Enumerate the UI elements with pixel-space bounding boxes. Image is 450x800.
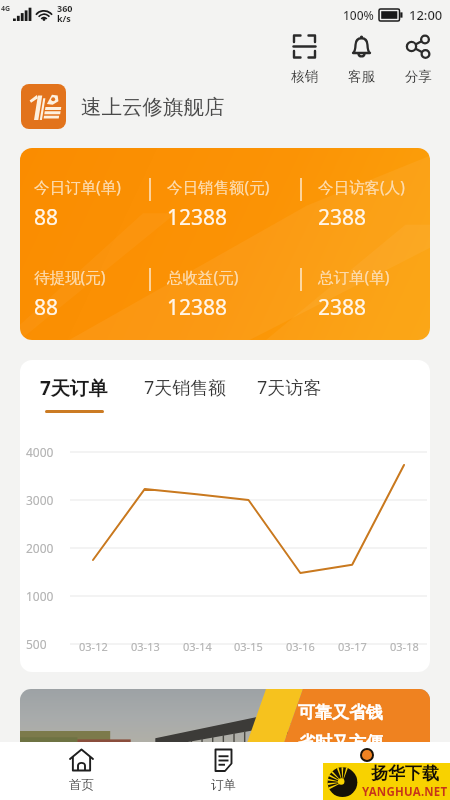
staticText: 待提现(元) (34, 266, 106, 287)
staticText: 03-16 (286, 639, 315, 654)
staticText: 客服 (348, 68, 375, 85)
staticText: 今日订单(单) (34, 176, 121, 197)
staticText: 订单 (211, 777, 236, 793)
staticText: 4G (1, 4, 11, 14)
staticText: 速上云修旗舰店 (81, 94, 225, 120)
button[interactable]: 7天订单 (40, 375, 108, 413)
button[interactable]: 首页 (51, 742, 112, 798)
button[interactable]: 订单 (193, 742, 254, 798)
staticText: 88 (34, 203, 59, 232)
staticText: 核销 (291, 68, 318, 85)
staticText: 总订单(单) (318, 266, 390, 287)
button[interactable]: 7天销售额 (144, 375, 227, 400)
staticText: 总收益(元) (167, 266, 239, 287)
staticText: 03-15 (234, 639, 263, 654)
staticText: 今日访客(人) (318, 176, 405, 197)
staticText: 2388 (318, 203, 367, 232)
staticText: 今日销售额(元) (167, 176, 270, 197)
staticText: 首页 (69, 777, 94, 793)
staticText: 2388 (318, 293, 367, 322)
button[interactable]: Share (401, 32, 435, 87)
staticText: 12388 (167, 293, 228, 322)
staticText: 88 (34, 293, 59, 322)
staticText: 500 (26, 636, 47, 652)
staticText: 12388 (167, 203, 228, 232)
staticText: 扬华下载 (371, 763, 439, 784)
staticText: 7天访客 (257, 375, 322, 400)
staticText: 省时又方便 (298, 732, 383, 753)
staticText: 360 k/s (57, 2, 73, 24)
button[interactable]: Verify (287, 32, 321, 87)
staticText: 分享 (405, 68, 432, 85)
staticText: 03-17 (338, 639, 367, 654)
staticText: 03-18 (390, 639, 419, 654)
staticText: 03-12 (79, 639, 108, 654)
staticText: 03-13 (131, 639, 160, 654)
staticText: 12:00 (409, 6, 443, 24)
staticText: 4000 (26, 444, 54, 460)
staticText: 2000 (26, 540, 54, 556)
staticText: 100% (343, 7, 374, 23)
staticText: 7天订单 (40, 375, 108, 401)
button[interactable]: Customer service (344, 32, 378, 87)
staticText: 7天销售额 (144, 375, 227, 400)
staticText: 03-14 (183, 639, 212, 654)
button[interactable]: 7天访客 (257, 375, 322, 400)
staticText: 3000 (26, 492, 54, 508)
staticText: YANGHUA.NET (362, 784, 448, 800)
staticText: 1000 (26, 588, 54, 604)
staticText: 可靠又省钱 (298, 702, 383, 723)
